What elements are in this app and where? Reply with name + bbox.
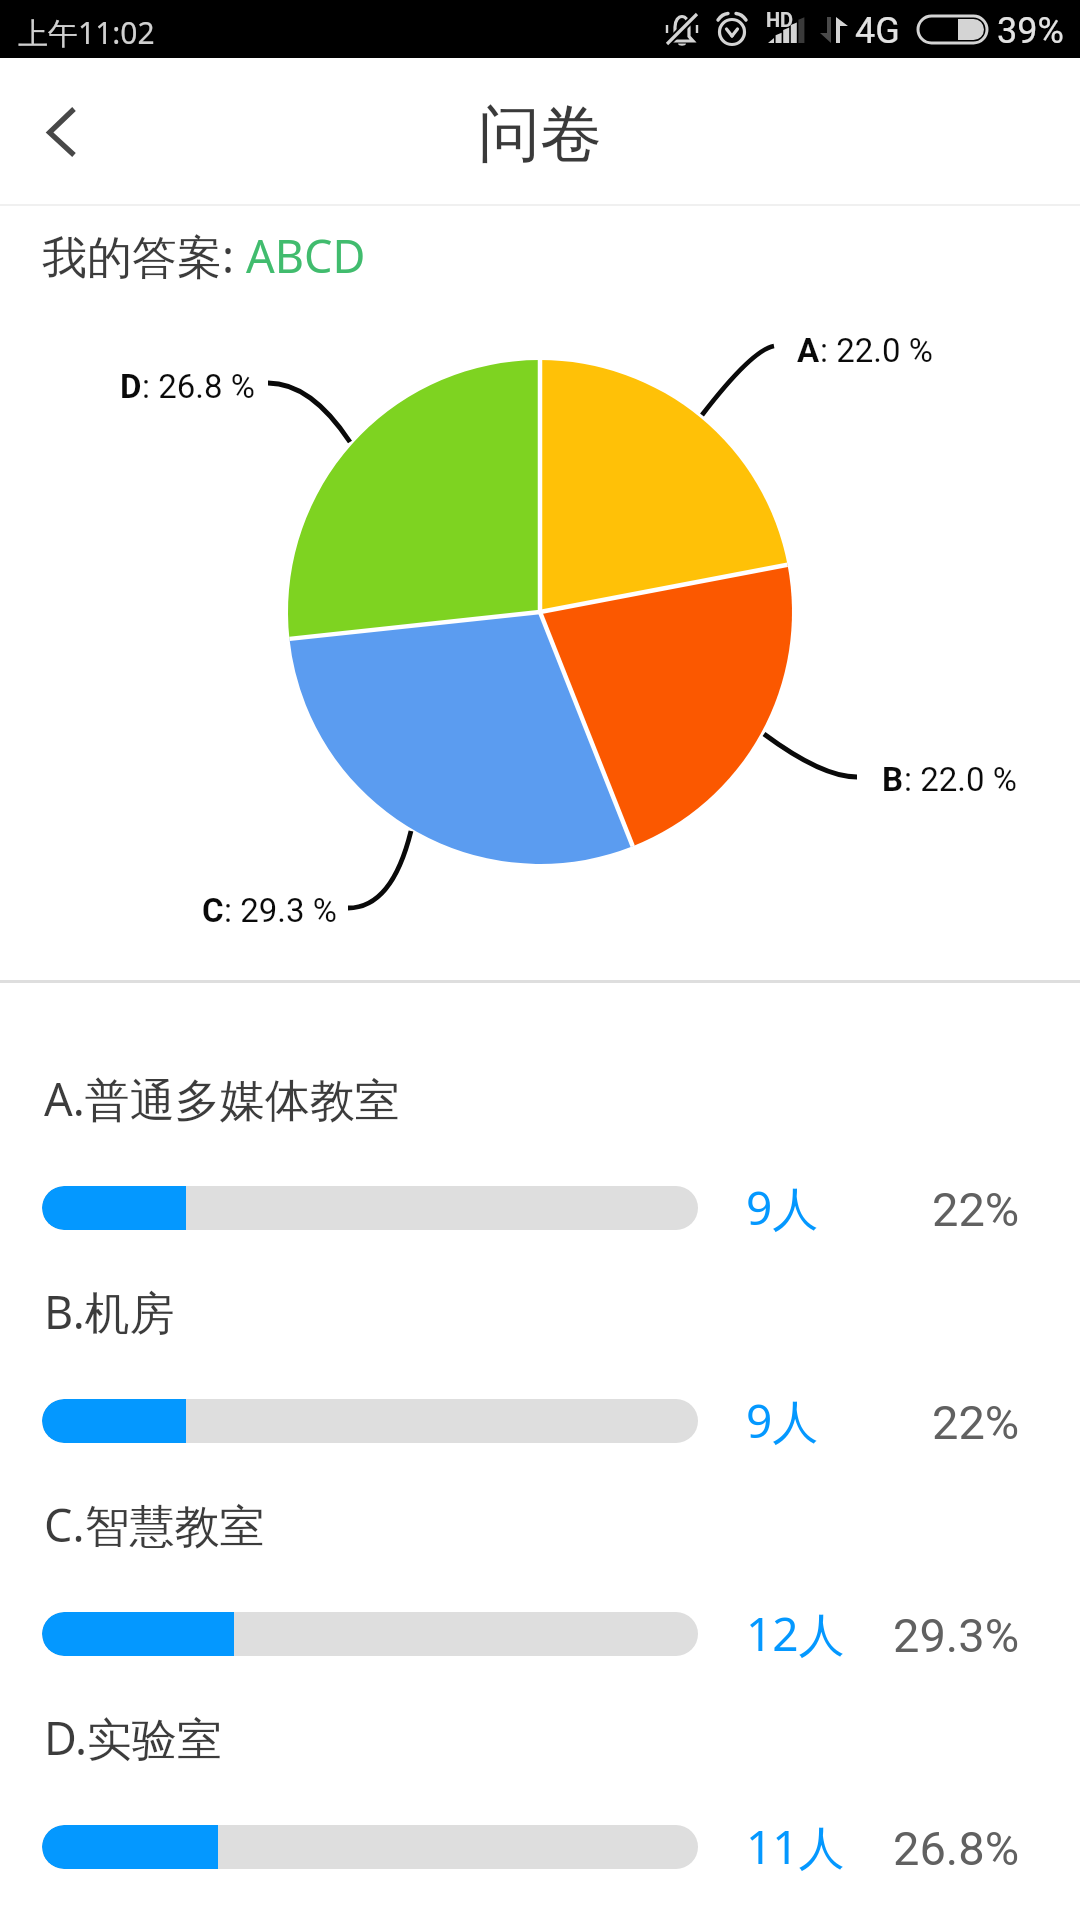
button[interactable]: B.机房	[0, 1259, 1080, 1472]
staticText: 9人	[746, 1389, 819, 1452]
staticText: : 22.0 %	[820, 331, 933, 370]
staticText: : 26.8 %	[142, 367, 255, 406]
staticText: 39%	[997, 10, 1064, 52]
staticText: 22%	[932, 1395, 1020, 1450]
staticText: C.智慧教室	[44, 1494, 265, 1555]
staticText: 29.3%	[893, 1608, 1020, 1663]
staticText: A	[797, 331, 820, 370]
staticText: 上午11:02	[18, 12, 155, 53]
staticText: A.普通多媒体教室	[44, 1068, 400, 1129]
button[interactable]: D.实验室	[0, 1685, 1080, 1898]
staticText: ABCD	[246, 225, 366, 286]
staticText: B	[882, 760, 904, 799]
staticText: 9人	[746, 1176, 819, 1239]
staticText: D	[120, 367, 142, 406]
staticText: 11人	[746, 1815, 845, 1878]
staticText: : 29.3 %	[224, 891, 337, 930]
staticText: 我的答案:	[42, 225, 246, 286]
button[interactable]: C.智慧教室	[0, 1472, 1080, 1685]
staticText: 问卷	[478, 95, 602, 173]
button[interactable]: Back	[9, 79, 113, 183]
staticText: : 22.0 %	[904, 760, 1017, 799]
staticText: 12人	[746, 1602, 845, 1665]
staticText: 4G	[855, 10, 900, 52]
staticText: B.机房	[44, 1281, 175, 1342]
staticText: 26.8%	[893, 1821, 1020, 1876]
staticText: HD	[766, 8, 794, 31]
staticText: 22%	[932, 1182, 1020, 1237]
button[interactable]: A.普通多媒体教室	[0, 1046, 1080, 1259]
staticText: D.实验室	[44, 1707, 223, 1768]
staticText: C	[202, 891, 224, 930]
